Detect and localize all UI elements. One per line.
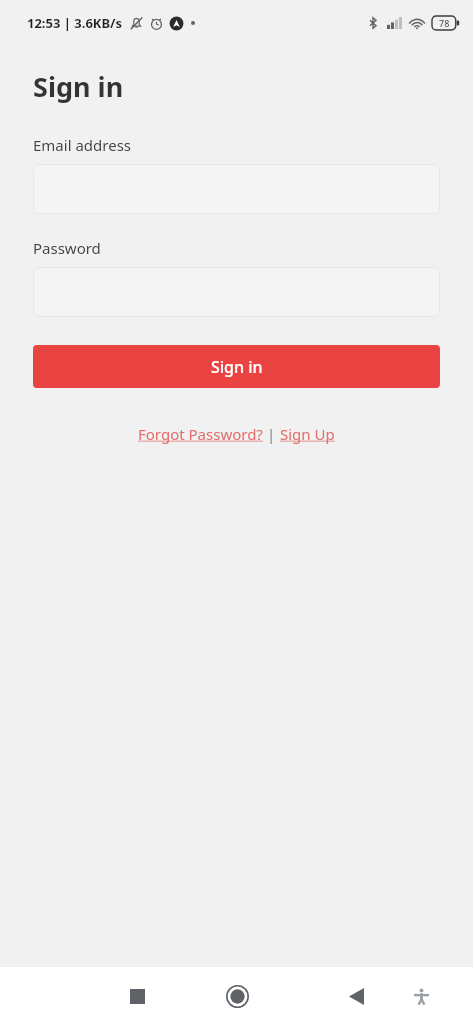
button[interactable]: Sign Up (280, 424, 335, 444)
staticText: Sign in (33, 68, 124, 105)
button[interactable]: Forgot Password? (138, 424, 263, 444)
staticText: Sign Up (280, 424, 335, 444)
staticText: Sign in (211, 356, 263, 378)
button[interactable]: Back (332, 972, 380, 1020)
button[interactable]: Accessibility (397, 972, 445, 1020)
button[interactable]: Home (213, 972, 261, 1020)
button[interactable]: Sign in (33, 345, 440, 388)
staticText: Forgot Password? (138, 424, 263, 444)
staticText: Password (33, 238, 101, 258)
staticText: 12:53 | 3.6KB/s (27, 14, 123, 32)
staticText: | (263, 424, 280, 444)
button[interactable]: Recent apps (113, 972, 161, 1020)
staticText: Email address (33, 135, 132, 155)
staticText: 78 (439, 17, 450, 29)
